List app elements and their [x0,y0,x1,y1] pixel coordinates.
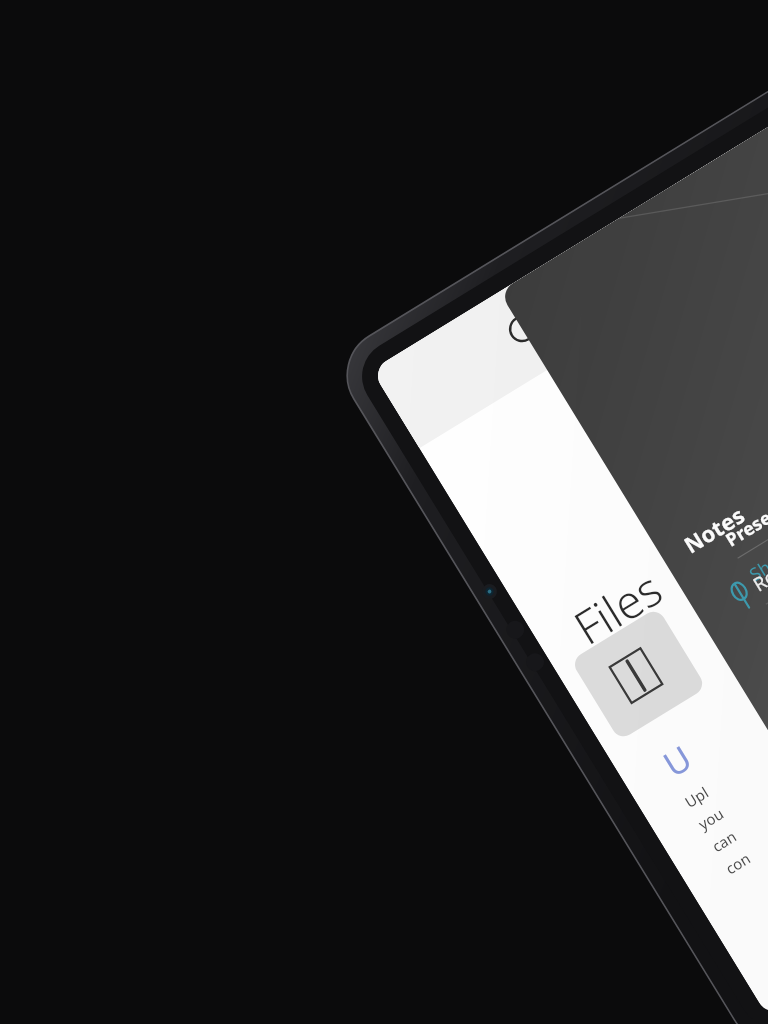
button[interactable]: Tablet app screenshot [0,0,768,1024]
